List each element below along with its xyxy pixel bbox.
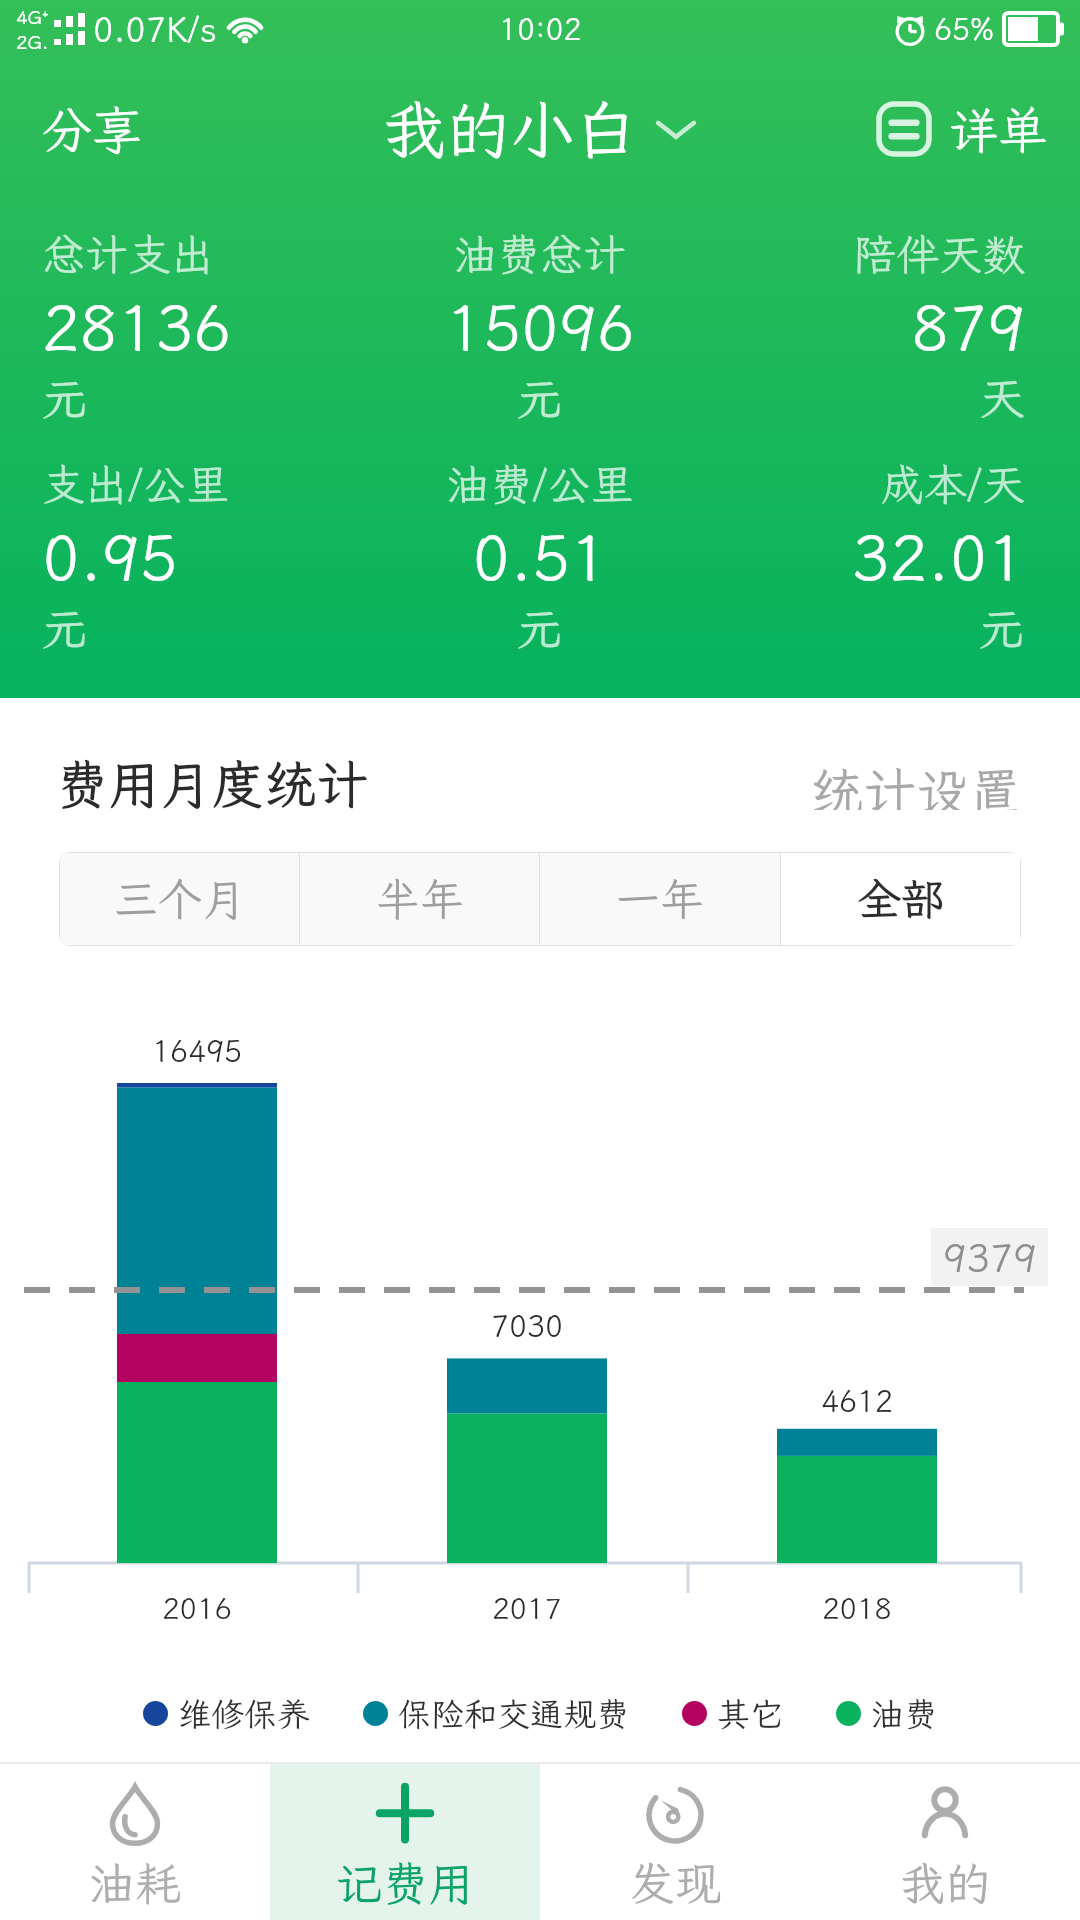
staticText: 其它 <box>717 1692 783 1735</box>
button[interactable]: 一年 <box>540 853 780 945</box>
staticText: 三个月 <box>114 870 246 928</box>
staticText: 4612 <box>821 1381 893 1421</box>
staticText: 4G⁺ <box>16 4 49 29</box>
staticText: 元 <box>42 598 360 659</box>
button[interactable]: 我的 <box>810 1764 1080 1920</box>
button[interactable]: 保险和交通规费 <box>363 1692 629 1735</box>
button[interactable]: 其它 <box>682 1692 783 1735</box>
staticText: 半年 <box>376 870 464 928</box>
button[interactable]: 我的小白 <box>382 87 698 171</box>
staticText: 详单 <box>948 96 1048 162</box>
staticText: 0.51 <box>360 515 720 598</box>
button[interactable]: 半年 <box>300 853 539 945</box>
staticText: 28136 <box>42 285 360 368</box>
staticText: 2016 <box>162 1589 232 1627</box>
staticText: 发现 <box>629 1853 721 1914</box>
staticText: 油费总计 <box>360 226 720 283</box>
staticText: 元 <box>360 598 720 659</box>
staticText: 65% <box>934 9 994 49</box>
staticText: 油费 <box>871 1692 937 1735</box>
button[interactable]: 记费用 <box>270 1764 540 1920</box>
staticText: 2G. <box>16 29 49 54</box>
staticText: 支出/公里 <box>42 456 360 513</box>
staticText: 费用月度统计 <box>56 749 369 817</box>
staticText: 15096 <box>360 285 720 368</box>
staticText: 9379 <box>943 1232 1037 1283</box>
staticText: 一年 <box>616 870 704 928</box>
button[interactable]: 详单 <box>876 96 1048 162</box>
staticText: 0.07K/s <box>93 7 217 52</box>
staticText: 元 <box>42 368 360 429</box>
staticText: 2018 <box>822 1589 892 1627</box>
staticText: 879 <box>720 285 1025 368</box>
staticText: 油费/公里 <box>360 456 720 513</box>
staticText: 保险和交通规费 <box>398 1692 629 1735</box>
staticText: 32.01 <box>720 515 1025 598</box>
staticText: 我的小白 <box>382 87 638 171</box>
staticText: 维修保养 <box>178 1692 310 1735</box>
staticText: 总计支出 <box>42 226 360 283</box>
staticText: 分享 <box>42 96 142 162</box>
staticText: 油耗 <box>89 1853 181 1914</box>
staticText: 我的 <box>899 1853 991 1914</box>
staticText: 7030 <box>491 1306 563 1346</box>
button[interactable]: 发现 <box>540 1764 810 1920</box>
button[interactable]: 全部 <box>781 853 1020 945</box>
button[interactable]: 统计设置 <box>810 756 1022 810</box>
button[interactable]: 油费 <box>836 1692 937 1735</box>
staticText: 10:02 <box>499 9 582 49</box>
staticText: 成本/天 <box>720 456 1025 513</box>
staticText: 全部 <box>857 870 945 928</box>
button[interactable]: 三个月 <box>60 853 299 945</box>
button[interactable]: 油耗 <box>0 1764 270 1920</box>
button[interactable]: 维修保养 <box>143 1692 310 1735</box>
button[interactable]: 分享 <box>42 96 142 162</box>
staticText: 16495 <box>152 1031 242 1071</box>
staticText: 2017 <box>492 1589 562 1627</box>
staticText: 天 <box>720 368 1025 429</box>
staticText: 统计设置 <box>810 756 1022 810</box>
staticText: 陪伴天数 <box>720 226 1025 283</box>
staticText: 元 <box>360 368 720 429</box>
staticText: 记费用 <box>336 1853 474 1914</box>
staticText: 元 <box>720 598 1025 659</box>
staticText: 0.95 <box>42 515 360 598</box>
